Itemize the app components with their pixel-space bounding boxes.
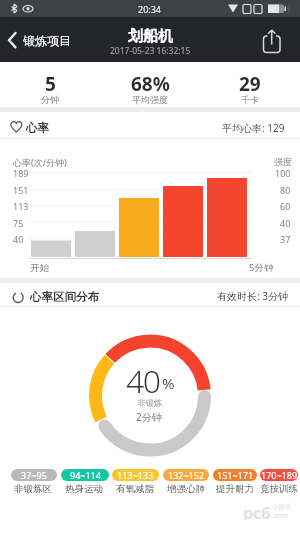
staticText: 5分钟 <box>249 261 274 274</box>
staticText: 189 <box>13 167 29 179</box>
button[interactable] <box>252 25 286 55</box>
staticText: 有氧减脂 <box>116 483 154 495</box>
staticText: 75 <box>13 217 24 229</box>
staticText: 113 <box>13 200 29 212</box>
staticText: 100 <box>275 167 291 179</box>
staticText: 增强心肺 <box>167 483 205 495</box>
staticText: 40 <box>280 217 291 229</box>
staticText: 热身运动 <box>65 483 103 495</box>
staticText: 151 <box>13 184 29 196</box>
staticText: 平均强度 <box>132 94 168 105</box>
staticText: 有效时长: 3分钟 <box>217 289 288 302</box>
button[interactable]: 151~171 <box>213 469 257 481</box>
staticText: 2017-05-23 16:32:15 <box>110 45 191 57</box>
staticText: 非锻炼区 <box>14 483 52 495</box>
staticText: 170~189 <box>261 469 298 481</box>
button[interactable]: 113~133 <box>112 469 159 481</box>
staticText: 小游戏 <box>272 503 292 511</box>
staticText: 2分钟 <box>136 410 162 423</box>
staticText: 分钟 <box>41 94 59 105</box>
staticText: 40 <box>13 233 24 245</box>
staticText: 80 <box>280 184 291 196</box>
staticText: pc6 <box>243 502 271 520</box>
staticText: 37 <box>280 233 291 245</box>
staticText: 千卡 <box>241 94 259 105</box>
button[interactable]: 37~95 <box>11 469 57 481</box>
button[interactable]: 132~152 <box>163 469 209 481</box>
staticText: 心率区间分布 <box>30 290 99 303</box>
staticText: 132~152 <box>168 469 205 481</box>
staticText: 37~95 <box>21 469 47 481</box>
staticText: 29 <box>239 71 261 93</box>
button[interactable]: 94~114 <box>61 469 109 481</box>
staticText: 竞技训练 <box>260 483 298 495</box>
button[interactable] <box>0 17 70 62</box>
staticText: 锻炼项目 <box>23 33 71 48</box>
staticText: 心率 <box>26 121 49 134</box>
staticText: 151~171 <box>217 469 254 481</box>
staticText: 68% <box>131 71 170 93</box>
staticText: 开始 <box>30 262 49 274</box>
staticText: 5 <box>45 71 56 93</box>
staticText: 平均心率: 129 <box>222 121 285 134</box>
staticText: 提升耐力 <box>216 483 254 495</box>
staticText: .com <box>272 511 289 519</box>
staticText: 非锻炼 <box>137 398 163 409</box>
staticText: 强度 <box>274 156 292 167</box>
staticText: 94~114 <box>70 469 101 481</box>
staticText: 心率(次/分钟) <box>13 156 67 168</box>
staticText: 113~133 <box>117 469 154 481</box>
button[interactable]: 170~189 <box>260 469 298 481</box>
staticText: 40 <box>126 359 160 394</box>
staticText: 20:34 <box>138 3 162 15</box>
staticText: 60 <box>280 200 291 212</box>
staticText: % <box>162 373 175 390</box>
staticText: 划船机 <box>128 27 173 45</box>
